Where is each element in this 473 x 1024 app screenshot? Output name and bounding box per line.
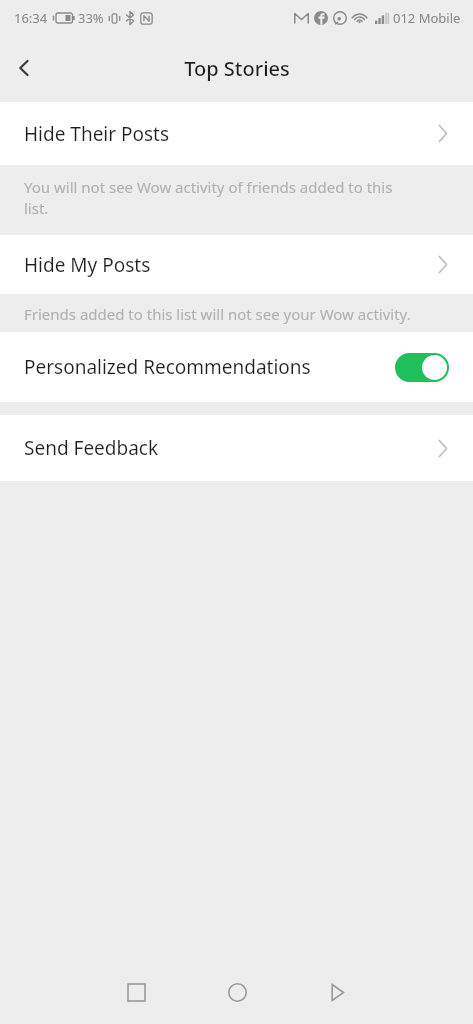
staticText: Hide My Posts bbox=[24, 252, 151, 278]
staticText: You will not see Wow activity of friends… bbox=[24, 177, 393, 219]
staticText: Top Stories bbox=[184, 55, 290, 82]
button[interactable]: Personalized Recommendations toggle bbox=[395, 353, 449, 382]
button[interactable]: Hide My Posts bbox=[0, 235, 473, 294]
button[interactable]: Personalized Recommendations bbox=[0, 332, 473, 402]
button[interactable]: Back bbox=[313, 968, 361, 1016]
staticText: Friends added to this list will not see … bbox=[24, 304, 411, 324]
button[interactable]: Back bbox=[0, 44, 48, 92]
button[interactable]: Hide Their Posts bbox=[0, 102, 473, 165]
staticText: Personalized Recommendations bbox=[24, 354, 311, 380]
button[interactable]: Send Feedback bbox=[0, 415, 473, 481]
staticText: 16:34 bbox=[14, 9, 48, 27]
staticText: 012 Mobile bbox=[393, 9, 461, 27]
button[interactable]: Home bbox=[213, 968, 261, 1016]
staticText: Send Feedback bbox=[24, 435, 159, 461]
button[interactable]: Recents bbox=[112, 968, 160, 1016]
staticText: Hide Their Posts bbox=[24, 121, 170, 147]
staticText: 33% bbox=[78, 9, 104, 27]
